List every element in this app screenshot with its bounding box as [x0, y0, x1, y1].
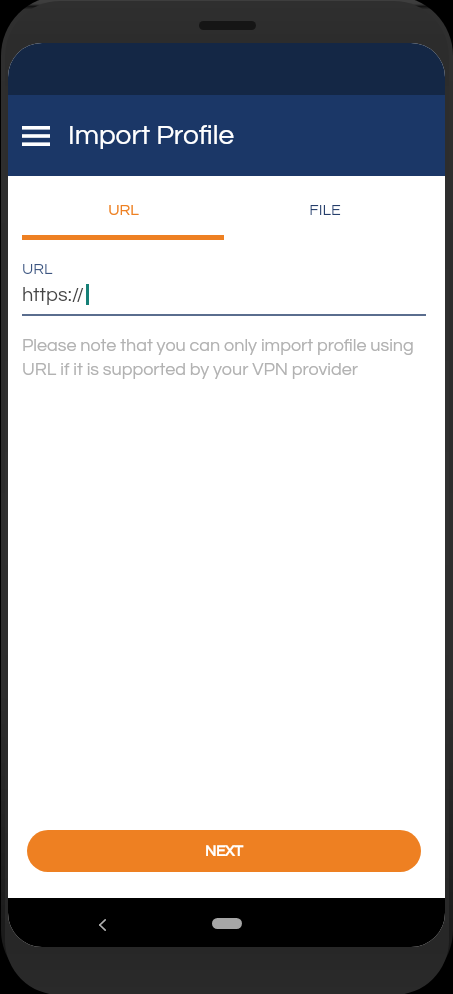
staticText: FILE	[309, 202, 341, 218]
staticText: https://	[22, 285, 84, 306]
staticText: URL	[22, 261, 53, 277]
staticText: Import Profile	[68, 121, 235, 150]
button[interactable]: NEXT	[27, 830, 421, 872]
staticText: Please note that you can only import pro…	[22, 336, 426, 379]
button[interactable]: URL	[22, 176, 224, 240]
button[interactable]: Home	[212, 918, 242, 929]
button[interactable]: Back	[85, 908, 119, 942]
staticText: NEXT	[205, 844, 243, 859]
button[interactable]: FILE	[224, 176, 426, 240]
staticText: URL	[108, 202, 139, 218]
button[interactable]: Open navigation menu	[11, 111, 61, 161]
